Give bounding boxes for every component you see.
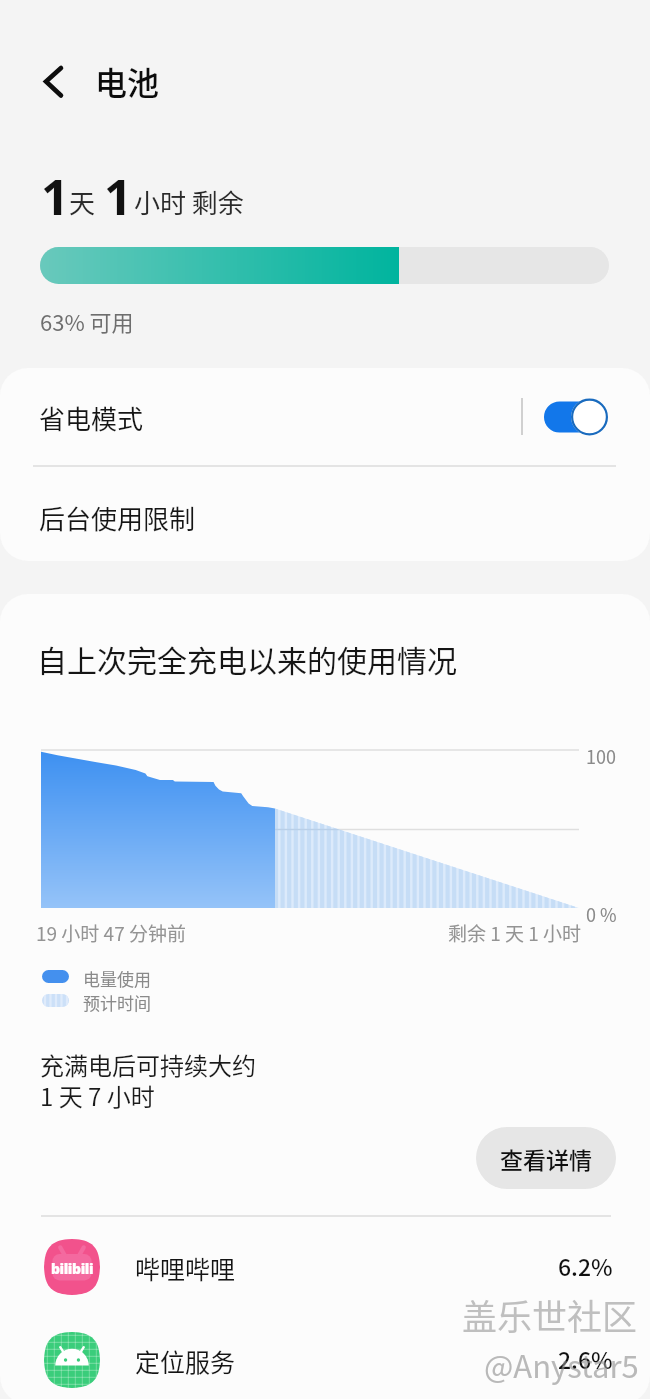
staticText: @Anystar5 [484, 1342, 639, 1387]
staticText: 2.6% [558, 1342, 613, 1375]
staticText: 定位服务 [135, 1343, 236, 1379]
button[interactable]: Power saving mode toggle [536, 397, 612, 437]
staticText: 充满电后可持续大约 [40, 1047, 256, 1082]
staticText: 省电模式 [39, 399, 144, 437]
button[interactable]: 查看详情 [476, 1127, 616, 1189]
staticText: 预计时间 [83, 990, 151, 1015]
button[interactable]: Back [28, 48, 78, 98]
staticText: 哔哩哔哩 [135, 1250, 236, 1286]
staticText: 剩余 1 天 1 小时 [448, 919, 582, 947]
staticText: 1 天 7 小时 [40, 1078, 155, 1113]
staticText: bilibili [51, 1259, 94, 1278]
staticText: 自上次完全充电以来的使用情况 [37, 637, 457, 680]
staticText: 1 [104, 163, 133, 230]
staticText: 天 [69, 183, 96, 221]
staticText: 63% 可用 [40, 305, 134, 337]
staticText: 100 [586, 743, 616, 769]
staticText: 查看详情 [500, 1142, 592, 1175]
staticText: 6.2% [558, 1249, 613, 1282]
button[interactable]: 省电模式 [0, 368, 650, 465]
staticText: 后台使用限制 [39, 499, 196, 537]
staticText: 小时 剩余 [134, 183, 244, 221]
button[interactable]: 定位服务 [0, 1309, 650, 1399]
button[interactable]: 后台使用限制 [0, 467, 650, 561]
staticText: 1 [41, 163, 70, 230]
staticText: 电量使用 [83, 966, 151, 991]
staticText: 盖乐世社区 [462, 1289, 638, 1340]
button[interactable]: bilibili [0, 1216, 650, 1309]
staticText: 19 小时 47 分钟前 [36, 919, 186, 947]
staticText: 电池 [95, 58, 160, 104]
staticText: 0 % [586, 901, 617, 927]
